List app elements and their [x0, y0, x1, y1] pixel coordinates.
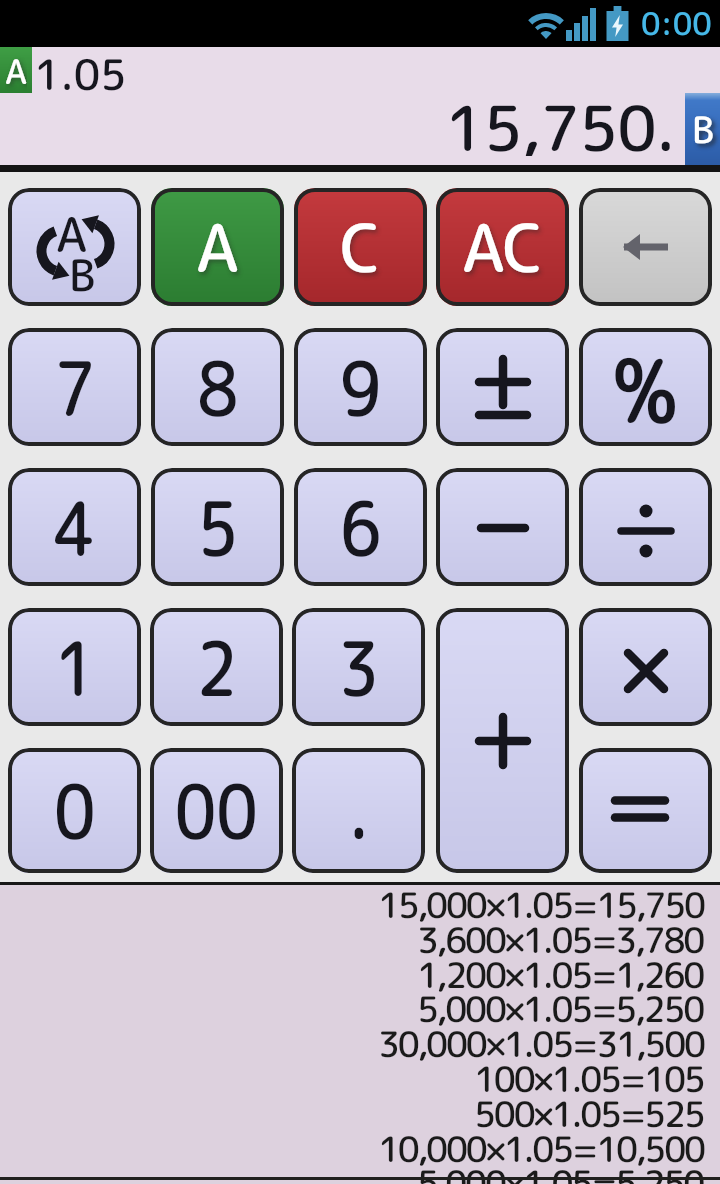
staticText: A [196, 201, 239, 293]
button[interactable]: 6 [294, 468, 427, 586]
staticText: AC [462, 201, 544, 293]
staticText: 5 [197, 475, 239, 580]
button[interactable]: A [151, 188, 284, 306]
button[interactable]: 5,000×1.05=5,250 [417, 984, 704, 1033]
button[interactable] [579, 468, 712, 586]
staticText: . [348, 758, 369, 863]
button[interactable]: 5,000×1.05=5,250 [417, 1158, 704, 1184]
button[interactable] [579, 748, 712, 873]
button[interactable] [579, 608, 712, 726]
button[interactable]: 15,000×1.05=15,750 [378, 880, 704, 929]
button[interactable] [436, 468, 569, 586]
button[interactable]: A [0, 47, 720, 93]
button[interactable]: % [579, 328, 712, 446]
button[interactable]: 9 [294, 328, 427, 446]
staticText: 6 [340, 475, 382, 580]
button[interactable]: 30,000×1.05=31,500 [378, 1019, 704, 1068]
staticText: 00 [175, 758, 258, 863]
button[interactable] [436, 608, 569, 873]
button[interactable]: 7 [8, 328, 141, 446]
button[interactable]: 1,200×1.05=1,260 [417, 950, 704, 999]
staticText: 0:00 [641, 2, 712, 45]
button[interactable]: 1 [8, 608, 141, 726]
button[interactable]: 2 [150, 608, 283, 726]
button[interactable]: 500×1.05=525 [474, 1089, 704, 1138]
button[interactable]: 0 [8, 748, 141, 873]
button[interactable]: 5 [151, 468, 284, 586]
staticText: 1.05 [34, 45, 127, 91]
staticText: 8 [197, 335, 239, 440]
staticText: A [5, 47, 27, 93]
button[interactable]: 3 [292, 608, 425, 726]
button[interactable]: . [292, 748, 425, 873]
button[interactable]: 00 [150, 748, 283, 873]
staticText: 2 [196, 615, 238, 720]
button[interactable]: 100×1.05=105 [474, 1054, 704, 1103]
staticText: B [69, 245, 96, 305]
button[interactable]: 10,000×1.05=10,500 [378, 1124, 704, 1173]
button[interactable]: 3,600×1.05=3,780 [417, 915, 704, 964]
staticText: 15,750. [445, 84, 676, 156]
button[interactable]: 4 [8, 468, 141, 586]
staticText: A [56, 200, 87, 267]
staticText: 1 [54, 615, 96, 720]
button[interactable] [436, 328, 569, 446]
staticText: B [692, 104, 714, 154]
button[interactable]: AC [436, 188, 569, 306]
button[interactable]: C [294, 188, 427, 306]
staticText: 4 [54, 475, 96, 580]
staticText: 7 [54, 335, 96, 440]
staticText: 9 [340, 335, 382, 440]
staticText: 3 [338, 615, 380, 720]
staticText: % [612, 328, 678, 446]
button[interactable] [579, 188, 712, 306]
button[interactable]: 8 [151, 328, 284, 446]
staticText: C [340, 201, 382, 293]
staticText: 0 [54, 758, 96, 863]
button[interactable]: A [8, 188, 141, 306]
button[interactable]: 15,750. [0, 93, 720, 165]
